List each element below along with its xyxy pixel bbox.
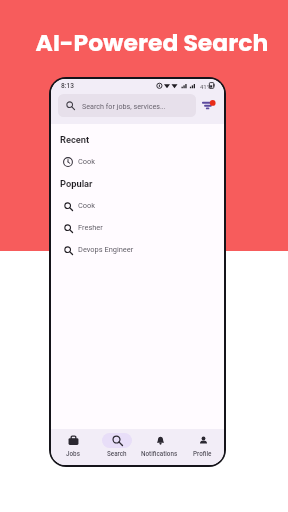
button[interactable]: Cook	[51, 150, 224, 172]
staticText: Fresher	[78, 223, 103, 232]
button[interactable]: Search	[95, 429, 138, 465]
button[interactable]: Notifications	[138, 429, 181, 465]
button[interactable]: Devops Engineer	[51, 238, 224, 260]
staticText: Recent	[60, 134, 90, 145]
staticText: Search	[107, 450, 127, 457]
staticText: Search for jobs, services...	[82, 102, 166, 110]
staticText: Cook	[78, 157, 96, 166]
button[interactable]: Profile	[181, 429, 224, 465]
staticText: Notifications	[141, 450, 178, 457]
button[interactable]: Search for jobs, services...	[58, 94, 196, 117]
staticText: Cook	[78, 201, 96, 210]
button[interactable]: Jobs	[51, 429, 95, 465]
button[interactable]: Fresher	[51, 216, 224, 238]
staticText: Profile	[193, 450, 212, 457]
staticText: Devops Engineer	[78, 245, 134, 254]
button[interactable]: Filter	[199, 96, 218, 115]
staticText: Popular	[60, 178, 93, 189]
staticText: Jobs	[66, 450, 80, 457]
staticText: 8:13	[61, 82, 74, 90]
staticText: 41%	[200, 83, 212, 90]
button[interactable]: Cook	[51, 194, 224, 216]
staticText: AI-Powered Search	[8, 26, 288, 59]
